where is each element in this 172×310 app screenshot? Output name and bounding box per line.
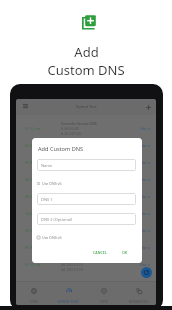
staticText: Use <box>140 126 147 131</box>
button[interactable]: Run speed test <box>141 267 152 278</box>
staticText: Use DNS v6 <box>42 181 62 186</box>
staticText: 77.88.8.8 <box>61 211 77 216</box>
button[interactable]: DNS 1 <box>37 193 136 205</box>
button[interactable]: Use DNS v6 <box>37 180 62 187</box>
button[interactable]: 91.02 ms <box>16 257 156 274</box>
button[interactable]: ADVANCED <box>121 282 156 305</box>
staticText: Use <box>140 211 147 216</box>
staticText: Custom DNS <box>47 61 125 79</box>
staticText: VPN <box>100 299 108 304</box>
staticText: DNS <box>30 299 38 304</box>
staticText: Comodo Secure DNS <box>61 121 97 126</box>
staticText: 55.80 ms <box>25 160 41 165</box>
button[interactable]: Menu <box>18 99 32 113</box>
staticText: Add <box>74 43 99 61</box>
staticText: 209.244.0.3 <box>61 143 81 148</box>
staticText: Use <box>140 228 147 233</box>
staticText: 77.88.8.1 <box>61 216 77 221</box>
staticText: Verisign DNS <box>61 155 84 160</box>
button[interactable]: Name <box>37 159 136 171</box>
staticText: ADVANCED <box>129 299 149 304</box>
staticText: 8.26.56.26 <box>61 126 79 131</box>
staticText: 94.140.15.15 <box>61 267 83 272</box>
staticText: Name <box>41 163 53 168</box>
button[interactable]: CANCEL <box>91 248 109 257</box>
button[interactable]: Add DNS <box>141 100 155 114</box>
staticText: DNS 1 <box>41 197 53 202</box>
staticText: 47.12 ms <box>25 126 41 131</box>
staticText: 80.14 ms <box>25 228 41 233</box>
staticText: Use <box>140 245 147 250</box>
button[interactable]: DNS <box>16 282 51 305</box>
staticText: 50.26 ms <box>25 143 41 148</box>
button[interactable]: 60.15 ms <box>16 172 156 189</box>
button[interactable]: OK <box>120 248 130 257</box>
staticText: SPEED TEST <box>58 299 79 304</box>
staticText: DNS 2 (Optional) <box>41 217 73 222</box>
staticText: Use <box>140 160 147 165</box>
staticText: OK <box>122 250 128 255</box>
staticText: Use <box>140 194 147 199</box>
staticText: 209.244.0.4 <box>61 148 81 153</box>
staticText: Use <box>140 262 147 267</box>
staticText: Use <box>140 177 147 182</box>
staticText: Use DNS v6 <box>42 235 62 240</box>
staticText: Use <box>140 143 147 148</box>
staticText: Speed Test <box>76 104 97 110</box>
button[interactable]: 80.14 ms <box>16 223 156 240</box>
staticText: 85.76 ms <box>25 245 41 250</box>
staticText: CloudFlare DNS <box>61 223 88 228</box>
staticText: Add Custom DNS <box>38 145 84 153</box>
button[interactable]: 74.62 ms <box>16 206 156 223</box>
button[interactable]: SPEED TEST <box>51 282 86 305</box>
staticText: 208.67.220.220 <box>61 182 88 187</box>
staticText: 94.140.14.14 <box>61 262 83 267</box>
staticText: 8.20.247.20 <box>61 131 81 136</box>
button[interactable]: 50.26 ms <box>16 138 156 155</box>
button[interactable]: 85.76 ms <box>16 240 156 257</box>
button[interactable]: Use DNS v6 <box>37 234 62 241</box>
staticText: 60.15 ms <box>25 177 41 182</box>
button[interactable]: DNS 2 (Optional) <box>37 213 136 225</box>
button[interactable]: 47.12 ms <box>16 121 156 138</box>
staticText: 91.02 ms <box>25 262 41 267</box>
staticText: CANCEL <box>93 250 107 255</box>
staticText: 74.62 ms <box>25 211 41 216</box>
button[interactable]: 68.33 ms <box>16 189 156 206</box>
button[interactable]: VPN <box>86 282 121 305</box>
staticText: DNS.Watch <box>61 189 81 194</box>
button[interactable]: 55.80 ms <box>16 155 156 172</box>
staticText: 68.33 ms <box>25 194 41 199</box>
